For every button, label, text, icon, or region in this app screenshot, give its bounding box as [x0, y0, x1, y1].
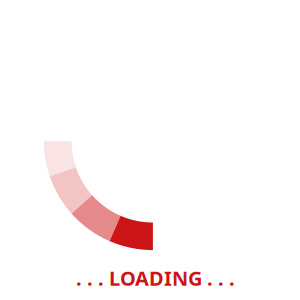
staticText: . . . LOADING . . .: [76, 265, 235, 291]
